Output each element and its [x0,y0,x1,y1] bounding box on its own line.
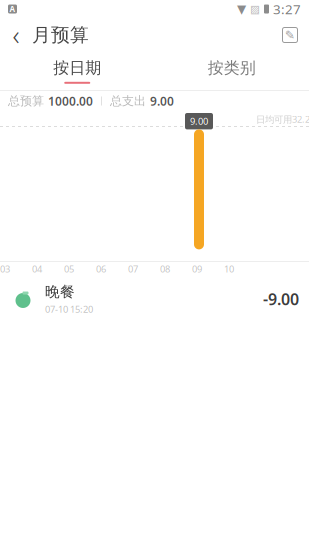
staticText: -9.00 [263,288,299,310]
button[interactable]: Edit [271,18,309,52]
staticText: 08 [160,263,170,275]
button[interactable]: Back [0,18,32,52]
staticText: 03 [0,263,10,275]
staticText: 总支出 [110,94,146,108]
staticText: 按日期 [53,58,101,78]
staticText: 3:27 [273,0,301,18]
staticText: 09 [192,263,202,275]
staticText: 按类别 [208,58,256,78]
staticText: 07 [128,263,138,275]
button[interactable]: 按类别 [154,52,309,90]
staticText: 总预算 [8,94,44,108]
staticText: 9.00 [150,93,174,109]
staticText: ‹ [12,17,19,53]
staticText: 1000.00 [48,93,93,109]
staticText: 06 [96,263,106,275]
staticText: 07-10 15:20 [45,303,93,315]
staticText: ✎ [285,28,295,42]
staticText: 9.00 [190,115,208,127]
staticText: 日均可用32.28 [256,113,309,125]
staticText: 05 [64,263,74,275]
staticText: 晚餐 [45,283,75,301]
staticText: 月预算 [32,23,89,46]
staticText: A [9,4,15,14]
button[interactable]: 晚餐 [0,276,309,322]
button[interactable]: 按日期 [0,52,154,90]
staticText: 10 [224,263,234,275]
staticText: 04 [32,263,42,275]
staticText: ▨ [250,3,260,15]
staticText: ▼ [237,2,246,16]
